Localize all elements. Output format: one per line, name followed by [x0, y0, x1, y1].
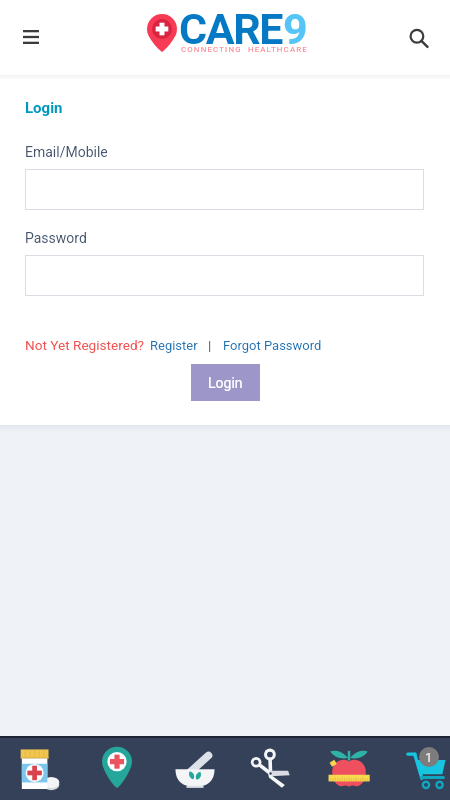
button[interactable]	[25, 169, 424, 210]
button[interactable]: Login	[191, 364, 260, 401]
button[interactable]: Search	[399, 18, 439, 58]
button[interactable]: Menu	[11, 17, 51, 57]
staticText: |	[208, 337, 212, 353]
staticText: Password	[25, 230, 87, 246]
staticText: 9	[283, 4, 308, 48]
button[interactable]: Surgery	[233, 738, 310, 800]
button[interactable]	[25, 255, 424, 296]
staticText: Login	[208, 375, 243, 391]
button[interactable]: Cart	[387, 738, 450, 800]
staticText: CARE	[179, 4, 283, 48]
button[interactable]: Clinics	[78, 738, 155, 800]
button[interactable]: Forgot Password	[223, 338, 322, 353]
staticText: 1	[425, 750, 433, 765]
staticText: CONNECTING HEALTHCARE	[181, 45, 308, 54]
button[interactable]: Medicines	[1, 738, 78, 800]
staticText: Login	[25, 99, 63, 117]
staticText: Email/Mobile	[25, 144, 108, 160]
staticText: Not Yet Registered?	[25, 337, 145, 353]
button[interactable]: Register	[150, 338, 198, 353]
button[interactable]: Ayurveda	[156, 738, 233, 800]
staticText: Forgot Password	[223, 338, 322, 353]
button[interactable]: Diet	[310, 738, 387, 800]
staticText: Register	[150, 338, 198, 353]
